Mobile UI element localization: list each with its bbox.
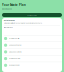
button[interactable]: Create your will [2, 35, 62, 42]
button[interactable]: Assign executor [2, 55, 62, 62]
staticText: A few steps left before your plan is rea… [4, 22, 42, 24]
button[interactable]: Review and sign [2, 62, 62, 68]
button[interactable]: Add beneficiaries [2, 42, 62, 48]
staticText: Continue setup [27, 14, 37, 16]
button[interactable]: Upload documents [2, 49, 62, 55]
staticText: Assign executor [9, 58, 21, 59]
staticText: Create your will [9, 38, 19, 39]
staticText: Review and sign [9, 64, 20, 66]
staticText: Add beneficiaries [9, 44, 22, 46]
button[interactable]: Continue setup [2, 13, 62, 17]
staticText: In progress [4, 27, 13, 28]
staticText: Your Estate Plan [2, 3, 26, 7]
staticText: Upload documents [9, 51, 22, 53]
staticText: is looking good [2, 8, 12, 10]
staticText: Estate Tasks [4, 20, 15, 21]
